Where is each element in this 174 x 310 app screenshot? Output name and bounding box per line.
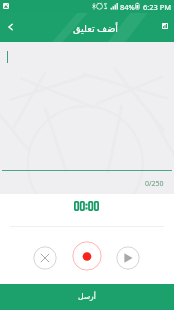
button[interactable]: Cancel <box>33 246 57 270</box>
button[interactable]: أرسل <box>0 284 174 310</box>
button[interactable]: Play <box>116 246 140 270</box>
staticText: 84% <box>120 2 135 12</box>
staticText: أضف تعليق <box>73 22 119 35</box>
staticText: 0/250 <box>145 179 164 189</box>
button[interactable]: Back <box>0 13 21 40</box>
staticText: أرسل <box>78 292 96 301</box>
staticText: 6:23 PM <box>143 2 172 12</box>
button[interactable]: Record <box>72 241 102 271</box>
button[interactable]: Statistics <box>156 13 174 39</box>
